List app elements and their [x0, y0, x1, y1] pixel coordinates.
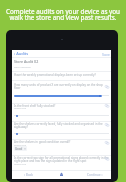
button[interactable]: Save [101, 52, 111, 57]
button[interactable]: Comment [105, 157, 109, 161]
staticText: Select one [14, 162, 27, 165]
button[interactable]: Good [14, 146, 27, 151]
staticText: Continue › [87, 173, 103, 177]
staticText: Is the correct two sign for all promotio… [14, 156, 109, 163]
staticText: Save [102, 52, 110, 57]
button[interactable]: ‹ Audits [12, 50, 111, 57]
staticText: Complete audits on your device as you wa… [0, 7, 126, 22]
button[interactable]: Continue › [78, 170, 111, 179]
staticText: How many units of product X are currentl… [14, 83, 103, 90]
button[interactable]: Save draft [45, 170, 78, 179]
staticText: ‹ Back [24, 173, 33, 177]
staticText: Select one [14, 125, 27, 128]
staticText: Item Approval [14, 65, 31, 68]
staticText: Good [15, 147, 23, 151]
staticText: Store Audit 02 [14, 59, 39, 64]
button[interactable]: Slider [14, 114, 109, 117]
button[interactable]: ‹ Back [12, 170, 45, 179]
staticText: Select one [14, 106, 27, 109]
button[interactable]: Slider [14, 132, 109, 135]
staticText: ‹ Audits [14, 51, 29, 56]
button[interactable]: Comment [105, 141, 109, 145]
button[interactable]: Comment [105, 104, 109, 108]
staticText: Are the shelves in good condition overal… [14, 140, 103, 144]
button[interactable]: Comment [105, 123, 109, 127]
staticText: Are the shelves correctly faced, fully s… [14, 122, 103, 129]
staticText: Is the front shelf fully stocked? [14, 104, 103, 108]
button[interactable]: Comment [105, 85, 109, 89]
staticText: Select one [14, 143, 27, 146]
button[interactable]: Slider [14, 94, 109, 97]
staticText: Have the weekly promotional displays bee… [14, 73, 106, 77]
